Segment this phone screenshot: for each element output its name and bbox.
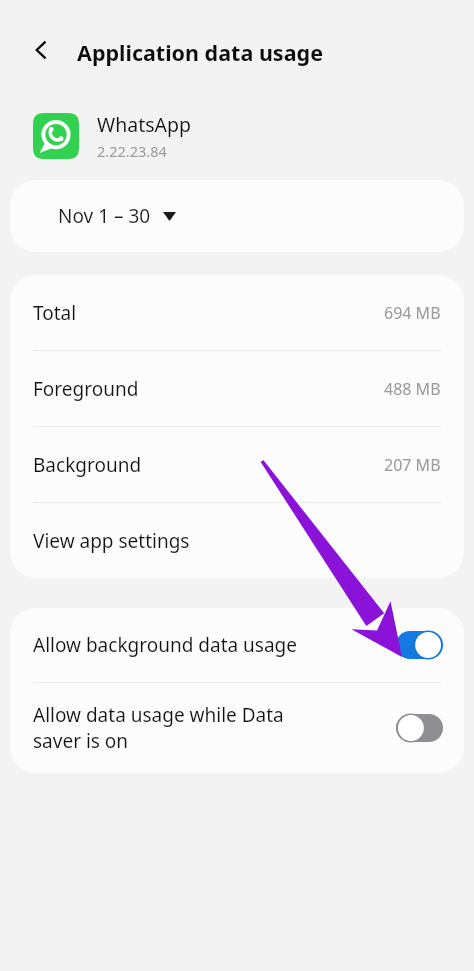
button[interactable]: Allow data usage while Data saver is on xyxy=(10,683,464,773)
staticText: View app settings xyxy=(33,528,190,554)
staticText: 694 MB xyxy=(384,302,441,324)
staticText: Background xyxy=(33,452,142,478)
button[interactable]: Allow data usage while Data saver is on xyxy=(396,714,443,742)
button[interactable]: Total xyxy=(10,275,464,350)
staticText: Application data usage xyxy=(77,38,323,67)
staticText: Nov 1 – 30 xyxy=(58,203,151,229)
button[interactable]: WhatsApp xyxy=(0,100,474,172)
staticText: Allow data usage while Data saver is on xyxy=(33,702,333,754)
button[interactable]: Nov 1 – 30 xyxy=(10,180,464,252)
staticText: Allow background data usage xyxy=(33,632,333,658)
button[interactable]: Allow background data usage xyxy=(10,608,464,682)
button[interactable]: Back xyxy=(20,28,64,72)
staticText: Foreground xyxy=(33,376,139,402)
staticText: Total xyxy=(33,300,77,326)
staticText: WhatsApp xyxy=(97,111,191,138)
button[interactable]: View app settings xyxy=(10,503,464,578)
staticText: 2.22.23.84 xyxy=(97,141,167,161)
button[interactable]: Foreground xyxy=(10,351,464,426)
staticText: 488 MB xyxy=(384,378,441,400)
button[interactable]: Allow background data usage xyxy=(396,631,443,659)
button[interactable]: Background xyxy=(10,427,464,502)
staticText: 207 MB xyxy=(384,454,441,476)
